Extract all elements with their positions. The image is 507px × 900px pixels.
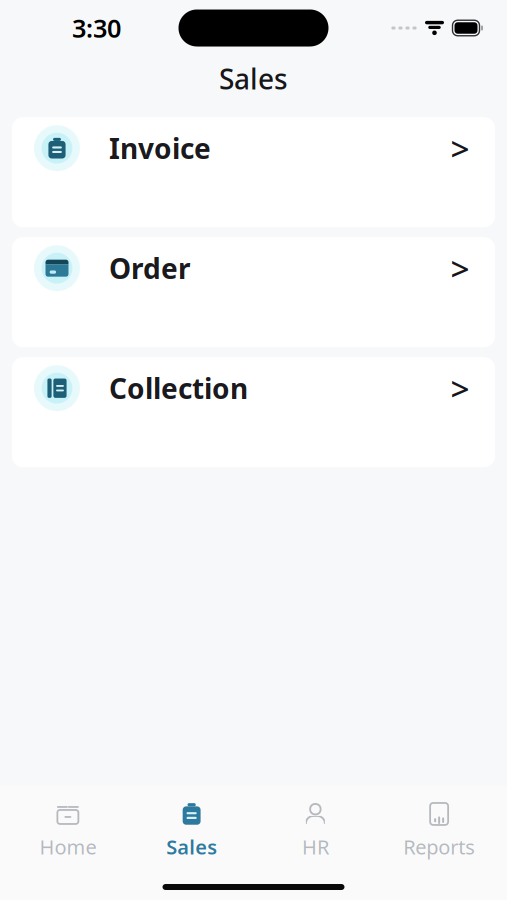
button[interactable]: Order (12, 237, 495, 347)
staticText: 3:30 (72, 11, 121, 45)
staticText: Sales (166, 833, 217, 860)
staticText: Order (109, 250, 191, 287)
button[interactable]: Home (6, 797, 130, 864)
staticText: Reports (403, 833, 475, 860)
button[interactable]: Sales (130, 797, 254, 864)
staticText: Home (39, 833, 96, 860)
button[interactable]: Collection (12, 357, 495, 467)
staticText: > (450, 126, 469, 170)
staticText: Sales (219, 60, 288, 97)
staticText: Collection (109, 370, 248, 407)
staticText: > (450, 366, 469, 410)
button[interactable]: HR (253, 797, 377, 864)
staticText: > (450, 246, 469, 290)
staticText: Invoice (109, 130, 211, 167)
staticText: HR (302, 833, 329, 860)
button[interactable]: Invoice (12, 117, 495, 227)
button[interactable]: Reports (377, 797, 501, 864)
